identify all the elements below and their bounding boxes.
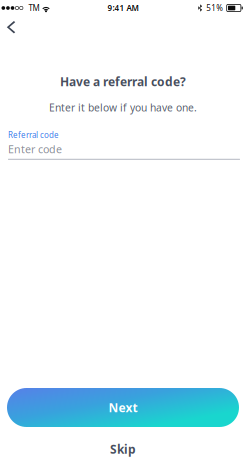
staticText: TM — [28, 3, 39, 13]
button[interactable]: Skip — [0, 442, 246, 456]
button[interactable]: Back — [0, 14, 29, 40]
staticText: Referral code — [8, 129, 59, 140]
staticText: 9:41 AM — [107, 3, 138, 13]
button[interactable]: Next — [7, 388, 239, 427]
staticText: Skip — [110, 441, 136, 457]
staticText: Enter it below if you have one. — [49, 100, 197, 114]
staticText: 51% — [206, 3, 223, 13]
staticText: Enter code — [8, 142, 62, 156]
staticText: Next — [108, 399, 137, 415]
staticText: Have a referral code? — [60, 74, 186, 89]
